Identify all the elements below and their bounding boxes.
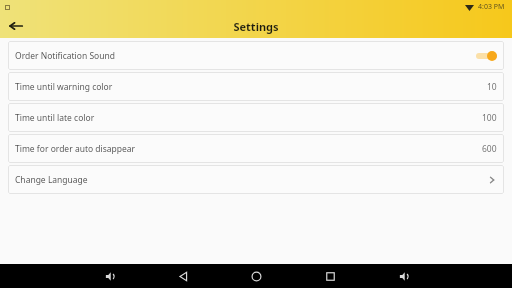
button[interactable]: Home — [242, 264, 270, 288]
staticText: 100 — [482, 112, 497, 124]
button[interactable]: Order Notification Sound — [8, 41, 504, 70]
staticText: 4:03 PM — [478, 2, 505, 12]
button[interactable]: Order notification sound toggle — [476, 51, 497, 61]
button[interactable]: Volume up — [390, 264, 418, 288]
button[interactable]: Time until late color — [8, 103, 504, 132]
staticText: Time until warning color — [15, 81, 113, 93]
button[interactable]: Time for order auto disappear — [8, 134, 504, 163]
staticText: Time until late color — [15, 112, 95, 124]
button[interactable]: Back — [4, 14, 28, 38]
staticText: Settings — [233, 19, 279, 34]
staticText: 600 — [482, 143, 497, 155]
other: Open — [487, 175, 497, 185]
button[interactable]: Time until warning color — [8, 72, 504, 101]
button[interactable]: Recents — [316, 264, 344, 288]
staticText: Time for order auto disappear — [15, 143, 136, 155]
button[interactable]: Back — [169, 264, 197, 288]
staticText: Change Language — [15, 174, 88, 186]
staticText: Order Notification Sound — [15, 50, 115, 62]
button[interactable]: Volume down — [96, 264, 124, 288]
button[interactable]: Change Language — [8, 165, 504, 194]
staticText: 10 — [487, 81, 497, 93]
